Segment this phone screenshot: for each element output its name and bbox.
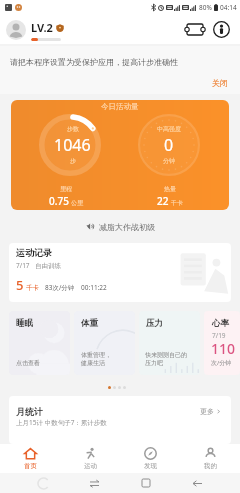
staticText: 更多 [200,407,214,416]
button[interactable]: 运动 [60,444,120,473]
button[interactable]: 心率 [204,311,240,375]
staticText: 04:14 [220,3,237,12]
staticText: 心率 [212,318,229,329]
staticText: 关闭 [212,78,228,88]
staticText: 今日活动量 [101,102,139,111]
staticText: 7/17 [16,261,30,270]
button[interactable]: Back [188,474,206,492]
staticText: 分钟 [163,157,175,165]
button[interactable]: 运动记录 [9,243,231,302]
button[interactable]: 关闭 [212,78,228,88]
button[interactable]: Assistant [34,474,52,492]
staticText: 里程 [60,185,72,193]
staticText: 00:11:22 [81,283,107,292]
staticText: 发现 [144,462,157,470]
button[interactable]: LV.2 [6,18,64,41]
staticText: 减脂大作战初级 [99,222,155,232]
button[interactable]: 压力 [139,311,200,375]
button[interactable]: Coupons [183,17,207,41]
staticText: 110 [211,339,236,358]
staticText: 5 [16,276,24,294]
button[interactable]: 体重 [74,311,135,375]
button[interactable]: 今日活动量 [11,100,229,210]
staticText: 步数 [67,125,79,133]
button[interactable]: Recent apps [137,474,155,492]
staticText: 22 [157,194,169,208]
staticText: 83次/分钟 [45,283,75,292]
button[interactable]: 睡眠 [9,311,70,375]
staticText: 上月15计 中数句子7：累计步数 [16,418,107,427]
button[interactable]: 我的 [180,444,240,473]
staticText: 自由训练 [35,262,61,270]
staticText: 千卡 [26,284,39,292]
staticText: 次/分钟 [211,359,232,367]
staticText: 1046 [54,134,91,156]
button[interactable]: 减脂大作战初级 [0,210,240,243]
staticText: 首页 [24,462,37,470]
button[interactable]: 发现 [120,444,180,473]
staticText: 点击查看 [16,359,40,367]
staticText: 80% [199,3,212,12]
staticText: 0.75 [49,194,69,208]
staticText: 千卡 [171,199,183,207]
button[interactable]: 首页 [0,444,60,473]
staticText: 体重 [81,318,98,329]
staticText: 我的 [204,462,217,470]
staticText: 运动记录 [16,247,52,258]
staticText: 月统计 [16,406,43,417]
staticText: 睡眠 [16,318,33,329]
staticText: 体重管理， 健康生活 [81,351,111,367]
button[interactable]: 更多 [198,405,223,418]
button[interactable]: Account [209,17,233,41]
staticText: 压力 [146,318,163,329]
staticText: 公里 [71,199,83,207]
staticText: 步 [70,157,76,165]
staticText: 热量 [164,185,176,193]
staticText: 快来测测自己的 压力吧 [145,351,187,367]
staticText: 7/19 [212,331,226,340]
staticText: LV.2 [31,20,53,35]
staticText: 中高强度 [157,125,181,133]
staticText: 0 [164,134,174,156]
staticText: 请把本程序设置为受保护应用，提高计步准确性 [10,57,178,67]
staticText: 运动 [84,462,97,470]
button[interactable]: Switch apps [85,474,103,492]
